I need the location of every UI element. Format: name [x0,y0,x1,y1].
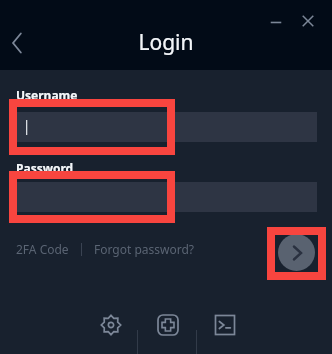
button[interactable]: Forgot password? [94,241,195,257]
button[interactable]: Close [296,9,320,33]
staticText: Username [16,87,78,103]
staticText: 2FA Code [16,241,69,257]
button[interactable]: Settings [92,306,130,344]
button[interactable]: Add [149,306,187,344]
staticText: Login [0,28,332,57]
button[interactable]: Terminal [206,306,244,344]
button[interactable]: 2FA Code [16,241,69,257]
button[interactable] [16,182,317,212]
staticText: Password [16,160,74,176]
button[interactable] [16,112,317,142]
button[interactable]: Back [2,28,32,58]
button[interactable]: Submit [278,234,315,271]
button[interactable]: Minimize [264,10,288,34]
staticText: Forgot password? [94,241,195,257]
